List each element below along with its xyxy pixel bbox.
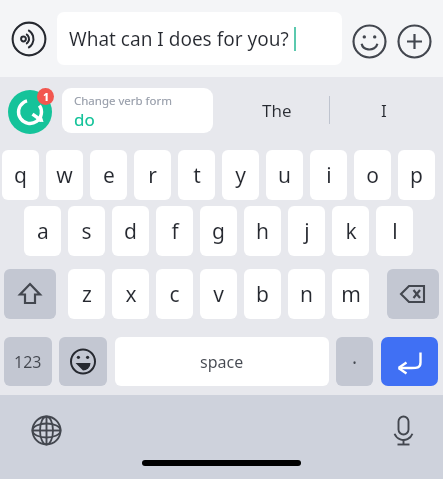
staticText: f (171, 217, 179, 246)
button[interactable]: x (112, 269, 149, 319)
button[interactable]: c (156, 269, 193, 319)
button[interactable]: o (354, 150, 391, 200)
button[interactable]: e (90, 150, 127, 200)
staticText: y (235, 161, 246, 190)
staticText: z (82, 280, 92, 309)
button[interactable]: The (225, 88, 329, 133)
button[interactable]: Change verb form (62, 88, 213, 133)
button[interactable]: Backspace (387, 269, 439, 319)
staticText: 123 (14, 351, 42, 373)
button[interactable]: k (332, 206, 369, 256)
staticText: d (124, 217, 137, 246)
staticText: c (169, 280, 180, 309)
button[interactable]: What can I does for you? (57, 12, 342, 65)
button[interactable]: I (330, 88, 438, 133)
button[interactable]: Add (397, 24, 432, 59)
button[interactable]: g (200, 206, 237, 256)
button[interactable]: s (68, 206, 105, 256)
button[interactable]: w (46, 150, 83, 200)
button[interactable]: Emoji keyboard (59, 337, 107, 386)
staticText: Change verb form (74, 93, 173, 109)
button[interactable]: u (266, 150, 303, 200)
button[interactable]: d (112, 206, 149, 256)
button[interactable]: Return (381, 337, 438, 386)
staticText: x (125, 280, 137, 309)
staticText: l (392, 217, 398, 246)
button[interactable]: Emoji (352, 24, 387, 59)
button[interactable]: Grammarly assistant, 1 suggestion (7, 88, 53, 134)
staticText: u (278, 161, 291, 190)
staticText: . (352, 344, 358, 370)
staticText: s (81, 217, 92, 246)
button[interactable]: Shift (4, 269, 56, 319)
button[interactable]: . (336, 337, 373, 386)
staticText: i (326, 161, 332, 190)
button[interactable]: b (244, 269, 281, 319)
button[interactable]: Voice input (385, 412, 422, 449)
button[interactable]: f (156, 206, 193, 256)
button[interactable]: l (376, 206, 413, 256)
button[interactable]: i (310, 150, 347, 200)
staticText: e (103, 161, 115, 190)
button[interactable]: m (332, 269, 369, 319)
button[interactable]: v (200, 269, 237, 319)
button[interactable]: a (24, 206, 61, 256)
button[interactable]: r (134, 150, 171, 200)
staticText: The (262, 99, 292, 122)
staticText: space (200, 351, 244, 373)
staticText: t (193, 161, 201, 190)
button[interactable]: n (288, 269, 325, 319)
button[interactable]: q (2, 150, 39, 200)
staticText: I (381, 99, 387, 122)
staticText: q (14, 161, 27, 190)
staticText: r (148, 161, 157, 190)
button[interactable]: h (244, 206, 281, 256)
staticText: j (304, 217, 310, 246)
button[interactable]: Tone detector (11, 21, 47, 57)
staticText: v (213, 280, 224, 309)
button[interactable]: j (288, 206, 325, 256)
staticText: m (341, 280, 361, 309)
staticText: g (212, 217, 225, 246)
staticText: n (300, 280, 313, 309)
staticText: h (256, 217, 269, 246)
button[interactable]: z (68, 269, 105, 319)
staticText: a (37, 217, 49, 246)
staticText: o (366, 161, 379, 190)
button[interactable]: Change language (28, 412, 65, 449)
button[interactable]: y (222, 150, 259, 200)
staticText: w (56, 161, 73, 190)
button[interactable]: space (115, 337, 329, 386)
staticText: do (74, 108, 95, 131)
staticText: b (256, 280, 269, 309)
staticText: 1 (43, 90, 49, 104)
button[interactable]: p (398, 150, 435, 200)
staticText: p (410, 161, 423, 190)
button[interactable]: t (178, 150, 215, 200)
staticText: What can I does for you? (69, 26, 289, 52)
staticText: k (345, 217, 357, 246)
button[interactable]: 123 (4, 337, 52, 386)
